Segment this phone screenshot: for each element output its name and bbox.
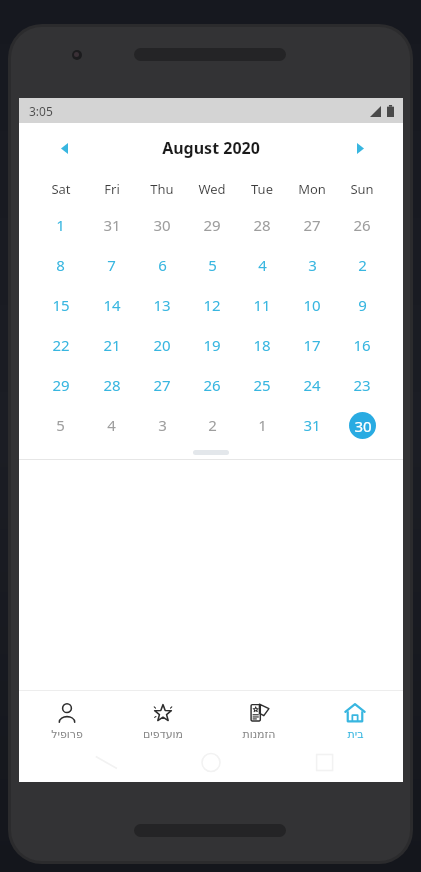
button[interactable] [193,450,229,455]
staticText: 2 [358,255,367,275]
staticText: 16 [353,335,371,355]
staticText: 2 [208,415,217,435]
button[interactable]: 17 [287,325,337,365]
button[interactable]: 14 [86,285,137,325]
button[interactable]: 13 [137,285,187,325]
staticText: 3 [158,415,167,435]
button[interactable]: 1 [35,205,86,245]
button[interactable]: 1 [237,405,287,445]
staticText: 30 [153,215,171,235]
button[interactable]: 31 [86,205,137,245]
staticText: 4 [107,415,116,435]
button[interactable]: 29 [35,365,86,405]
button[interactable]: 29 [187,205,237,245]
staticText: 14 [103,295,121,315]
staticText: Thu [150,180,174,198]
staticText: 5 [208,255,217,275]
button[interactable]: 19 [187,325,237,365]
staticText: 22 [52,335,70,355]
button[interactable]: 16 [337,325,387,365]
staticText: 18 [253,335,271,355]
staticText: Wed [198,180,226,198]
staticText: 21 [103,335,121,355]
staticText: Sun [350,180,374,198]
staticText: 8 [56,255,65,275]
staticText: Tue [251,180,273,198]
staticText: 11 [253,295,271,315]
staticText: 24 [303,375,321,395]
button[interactable]: 7 [86,245,137,285]
button[interactable]: 4 [237,245,287,285]
staticText: 26 [353,215,371,235]
button[interactable]: פרופיל [19,690,115,752]
button[interactable]: 3 [137,405,187,445]
staticText: 12 [203,295,221,315]
staticText: 3 [308,255,317,275]
button[interactable]: 22 [35,325,86,365]
button[interactable]: 23 [337,365,387,405]
staticText: 20 [153,335,171,355]
staticText: 31 [103,215,121,235]
button[interactable]: 5 [187,245,237,285]
staticText: 27 [303,215,321,235]
button[interactable]: 30 [337,405,387,445]
staticText: 26 [203,375,221,395]
button[interactable]: 18 [237,325,287,365]
staticText: בית [347,728,364,741]
staticText: 30 [354,416,372,436]
staticText: 10 [303,295,321,315]
button[interactable]: 28 [86,365,137,405]
staticText: 28 [103,375,121,395]
button[interactable]: 5 [35,405,86,445]
button[interactable]: מועדפים [115,690,211,752]
staticText: Sat [51,180,71,198]
staticText: 31 [303,415,321,435]
button[interactable]: 21 [86,325,137,365]
button[interactable]: 20 [137,325,187,365]
staticText: 13 [153,295,171,315]
staticText: 17 [303,335,321,355]
staticText: פרופיל [51,728,83,741]
staticText: 1 [258,415,267,435]
staticText: 29 [52,375,70,395]
staticText: 4 [258,255,267,275]
staticText: מועדפים [143,728,183,741]
button[interactable]: 31 [287,405,337,445]
button[interactable]: Next month [345,133,375,163]
button[interactable]: Previous month [49,133,79,163]
button[interactable]: 25 [237,365,287,405]
button[interactable]: בית [307,690,403,752]
button[interactable]: הזמנות [211,690,307,752]
staticText: August 2020 [162,137,260,159]
button[interactable]: 24 [287,365,337,405]
staticText: 6 [158,255,167,275]
button[interactable]: 6 [137,245,187,285]
button[interactable]: 2 [337,245,387,285]
button[interactable]: 9 [337,285,387,325]
button[interactable]: 26 [337,205,387,245]
staticText: 25 [253,375,271,395]
button[interactable]: 30 [137,205,187,245]
button[interactable]: 26 [187,365,237,405]
button[interactable]: 15 [35,285,86,325]
staticText: 15 [52,295,70,315]
staticText: 27 [153,375,171,395]
button[interactable]: 10 [287,285,337,325]
staticText: 9 [358,295,367,315]
button[interactable]: 28 [237,205,287,245]
button[interactable]: 12 [187,285,237,325]
button[interactable]: 11 [237,285,287,325]
button[interactable]: 27 [287,205,337,245]
staticText: 3:05 [29,103,53,119]
staticText: Mon [298,180,326,198]
button[interactable]: 27 [137,365,187,405]
staticText: Fri [104,180,120,198]
button[interactable]: 8 [35,245,86,285]
staticText: 29 [203,215,221,235]
staticText: 28 [253,215,271,235]
button[interactable]: 4 [86,405,137,445]
button[interactable]: 2 [187,405,237,445]
staticText: 19 [203,335,221,355]
button[interactable]: 3 [287,245,337,285]
staticText: 1 [56,215,65,235]
